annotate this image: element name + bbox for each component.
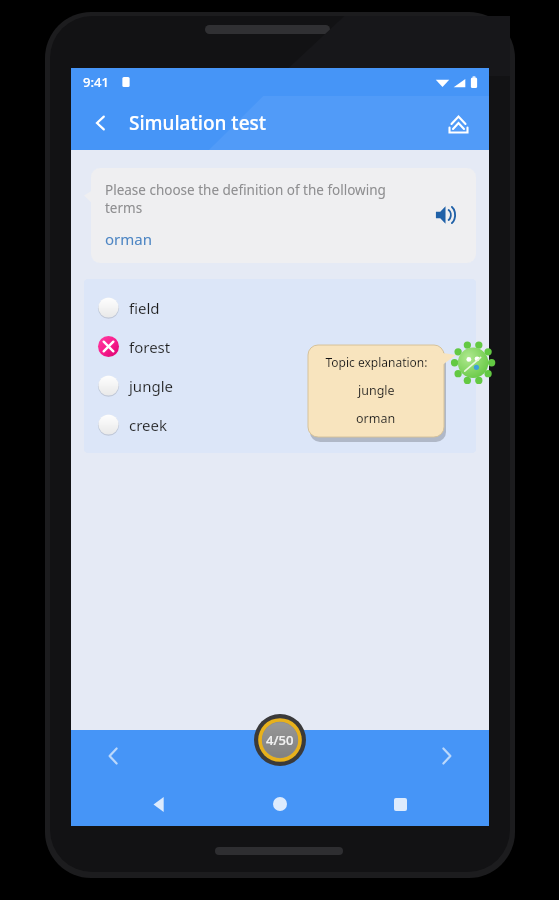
button[interactable]: Next question	[425, 735, 467, 777]
other: Helper character	[456, 343, 494, 381]
button[interactable]: 4/50	[252, 714, 308, 766]
button[interactable]: field	[84, 288, 476, 327]
staticText: Please choose the definition of the foll…	[105, 181, 414, 217]
button[interactable]: Back	[81, 103, 121, 143]
button[interactable]: Previous question	[93, 735, 135, 777]
staticText: orman	[105, 229, 152, 249]
button[interactable]: Back	[99, 782, 219, 826]
button[interactable]: Please choose the definition of the foll…	[91, 168, 476, 263]
button[interactable]: Recent apps	[340, 782, 461, 826]
staticText: Simulation test	[129, 110, 267, 136]
button[interactable]: forest	[84, 327, 476, 366]
staticText: creek	[129, 415, 168, 435]
button[interactable]: creek	[84, 405, 476, 444]
button[interactable]: jungle	[84, 366, 476, 405]
button[interactable]: Play pronunciation	[426, 195, 466, 235]
staticText: jungle	[129, 376, 173, 396]
staticText: jungle	[358, 382, 395, 399]
staticText: 9:41	[83, 73, 109, 91]
staticText: orman	[356, 410, 396, 427]
staticText: 4/50	[266, 731, 294, 749]
button[interactable]: Upgrade	[437, 102, 479, 144]
staticText: field	[129, 298, 160, 318]
staticText: forest	[129, 337, 171, 357]
staticText: Topic explanation:	[325, 354, 428, 370]
button[interactable]: Home	[219, 782, 340, 826]
